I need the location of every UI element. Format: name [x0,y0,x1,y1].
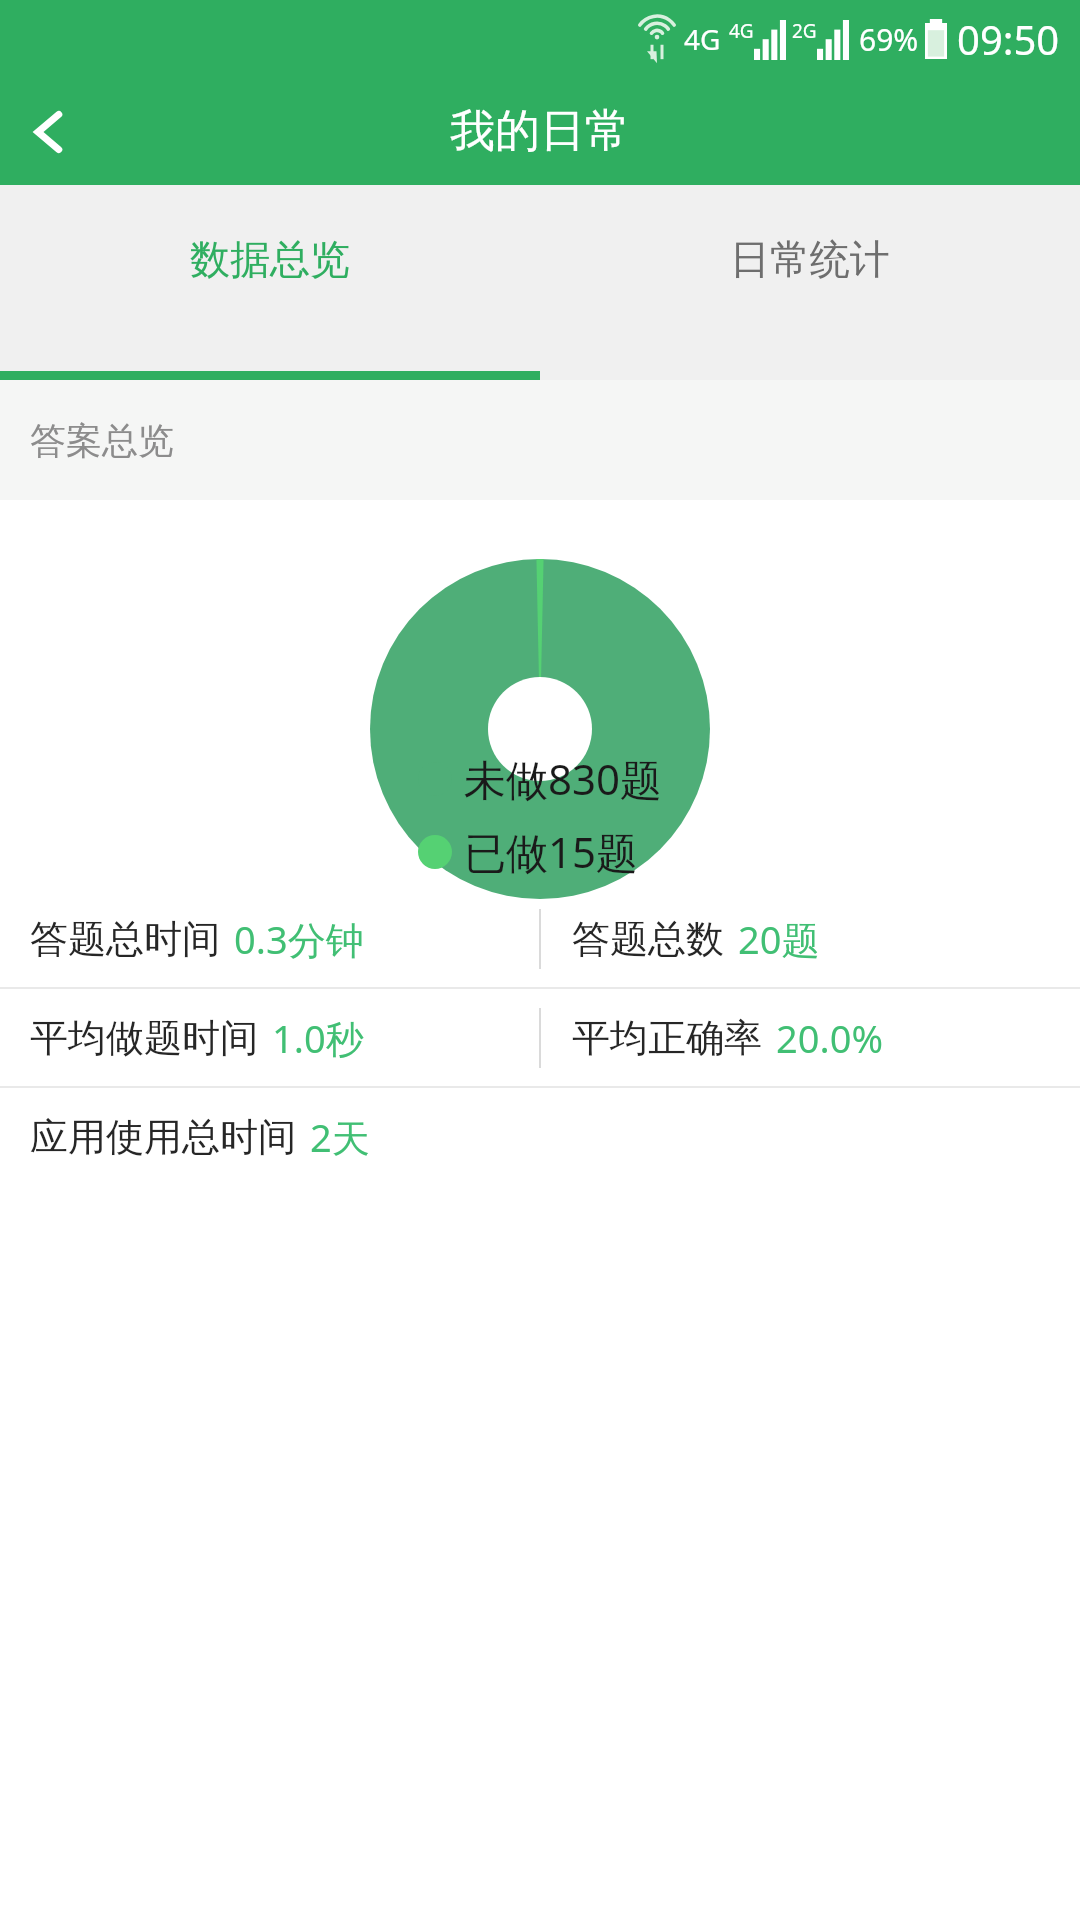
staticText: 应用使用总时间 [30,1113,296,1161]
button[interactable]: 平均做题时间 [0,989,540,1086]
staticText: 09:50 [957,12,1060,66]
staticText: 数据总览 [190,234,350,284]
button[interactable]: 答题总时间 [0,890,540,987]
button[interactable]: 数据总览 [0,185,540,380]
staticText: 日常统计 [730,234,890,284]
staticText: 未做830题 [464,750,663,807]
button[interactable]: 日常统计 [540,185,1080,380]
staticText: 我的日常 [450,103,630,160]
staticText: 20题 [738,913,820,965]
staticText: 0.3分钟 [234,913,364,965]
staticText: 69% [859,19,919,60]
staticText: 2天 [310,1111,370,1163]
button[interactable]: 答题总数 [540,890,1080,987]
staticText: 2G [792,18,817,44]
button[interactable]: 平均正确率 [540,989,1080,1086]
staticText: 已做15题 [464,823,639,880]
staticText: 答案总览 [30,418,174,463]
button[interactable]: 应用使用总时间 [0,1088,540,1185]
staticText: 4G [684,20,721,58]
button[interactable]: Back [0,82,100,182]
staticText: 4G [729,18,754,44]
staticText: 平均做题时间 [30,1014,258,1062]
staticText: 20.0% [776,1012,883,1064]
staticText: 答题总数 [572,915,724,963]
staticText: 平均正确率 [572,1014,762,1062]
staticText: 1.0秒 [272,1012,364,1064]
staticText: 答题总时间 [30,915,220,963]
